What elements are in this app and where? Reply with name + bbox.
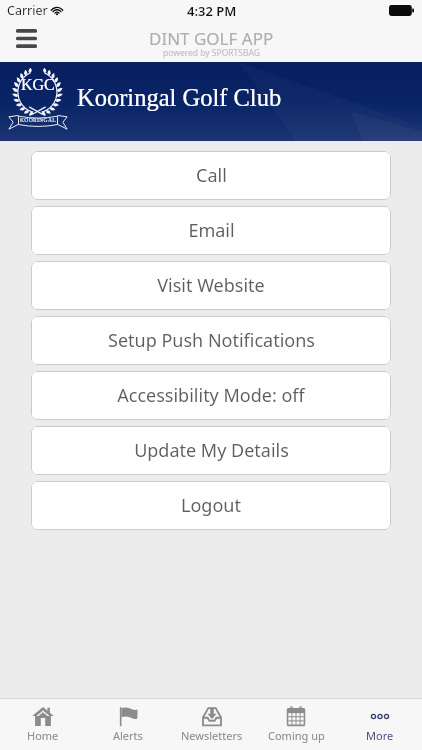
button[interactable]: Open navigation menu — [0, 21, 48, 62]
button[interactable]: Home — [0, 699, 85, 750]
button[interactable]: Newsletters — [170, 699, 254, 750]
staticText: Kooringal Golf Club — [77, 84, 282, 111]
staticText: Visit Website — [157, 273, 265, 298]
staticText: powered by SPORTSBAG — [163, 47, 260, 59]
staticText: More — [366, 728, 394, 743]
button[interactable]: Setup Push Notifications — [31, 316, 391, 365]
staticText: Alerts — [113, 728, 143, 743]
staticText: Call — [196, 163, 227, 188]
button[interactable]: Visit Website — [31, 261, 391, 310]
staticText: Newsletters — [181, 728, 243, 743]
button[interactable]: Coming up — [254, 699, 338, 750]
staticText: DINT GOLF APP — [149, 27, 274, 50]
staticText: KOORINGAL — [20, 117, 56, 123]
staticText: KGC — [21, 76, 55, 94]
staticText: Setup Push Notifications — [108, 328, 315, 353]
staticText: Home — [27, 728, 59, 743]
staticText: Accessibility Mode: off — [117, 383, 305, 408]
staticText: Update My Details — [134, 438, 289, 463]
button[interactable]: Alerts — [85, 699, 170, 750]
button[interactable]: Email — [31, 206, 391, 255]
button[interactable]: More — [338, 699, 422, 750]
button[interactable]: Logout — [31, 481, 391, 530]
button[interactable]: Call — [31, 151, 391, 200]
staticText: Carrier — [7, 2, 48, 19]
staticText: Coming up — [268, 728, 325, 743]
button[interactable]: Accessibility Mode: off — [31, 371, 391, 420]
staticText: Email — [188, 218, 235, 243]
staticText: 4:32 PM — [187, 2, 237, 20]
button[interactable]: Update My Details — [31, 426, 391, 475]
staticText: Logout — [181, 493, 241, 518]
